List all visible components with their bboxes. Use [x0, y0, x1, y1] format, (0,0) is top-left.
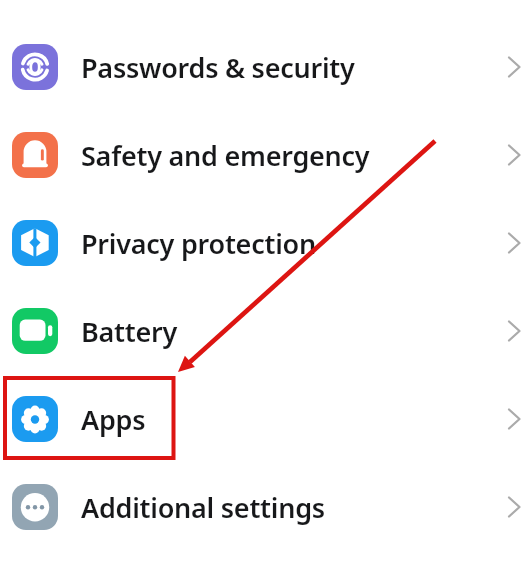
- button[interactable]: Safety and emergency: [0, 111, 529, 199]
- button[interactable]: Apps: [0, 375, 529, 463]
- button[interactable]: Passwords & security: [0, 23, 529, 111]
- button[interactable]: Privacy protection: [0, 199, 529, 287]
- staticText: Additional settings: [81, 489, 325, 526]
- staticText: Safety and emergency: [81, 137, 370, 174]
- staticText: Apps: [81, 401, 146, 438]
- staticText: Privacy protection: [81, 225, 316, 262]
- staticText: Battery: [81, 313, 178, 350]
- button[interactable]: Additional settings: [0, 463, 529, 551]
- staticText: Passwords & security: [81, 49, 355, 86]
- button[interactable]: Battery: [0, 287, 529, 375]
